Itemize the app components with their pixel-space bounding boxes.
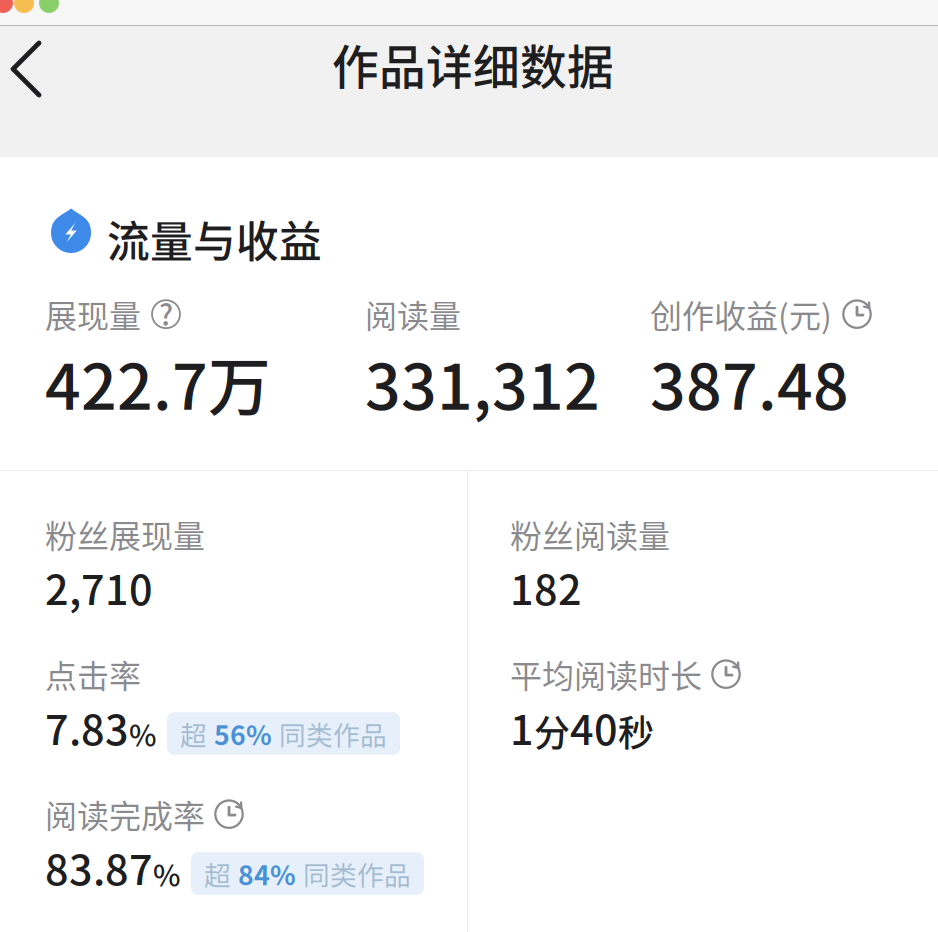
staticText: 作品详细数据 bbox=[332, 30, 614, 98]
staticText: 84% bbox=[238, 854, 296, 893]
staticText: 超 bbox=[204, 854, 231, 893]
staticText: 同类作品 bbox=[279, 714, 387, 753]
staticText: 阅读量 bbox=[365, 291, 461, 337]
staticText: 7.83 bbox=[45, 697, 129, 757]
staticText: 387.48 bbox=[650, 337, 849, 428]
staticText: 182 bbox=[510, 557, 582, 617]
staticText: 创作收益(元) bbox=[650, 291, 832, 337]
staticText: 422.7万 bbox=[45, 337, 271, 428]
staticText: 粉丝展现量 bbox=[45, 511, 205, 557]
staticText: 56% bbox=[214, 714, 272, 753]
staticText: % bbox=[153, 852, 181, 895]
staticText: 点击率 bbox=[45, 651, 141, 697]
staticText: 超 bbox=[180, 714, 207, 753]
staticText: 流量与收益 bbox=[107, 208, 322, 270]
staticText: 粉丝阅读量 bbox=[510, 511, 670, 557]
staticText: ? bbox=[159, 292, 173, 334]
staticText: 331,312 bbox=[365, 337, 600, 428]
button[interactable]: 返回 bbox=[0, 25, 78, 113]
staticText: 分 bbox=[534, 705, 570, 757]
staticText: 展现量 bbox=[45, 291, 141, 337]
staticText: 平均阅读时长 bbox=[510, 651, 702, 697]
staticText: 83.87 bbox=[45, 837, 153, 897]
staticText: 阅读完成率 bbox=[45, 791, 205, 837]
staticText: % bbox=[129, 712, 157, 755]
staticText: 40 bbox=[570, 697, 618, 757]
staticText: 秒 bbox=[618, 705, 654, 757]
staticText: 同类作品 bbox=[303, 854, 411, 893]
staticText: 1 bbox=[510, 697, 534, 757]
staticText: 2,710 bbox=[45, 557, 153, 617]
